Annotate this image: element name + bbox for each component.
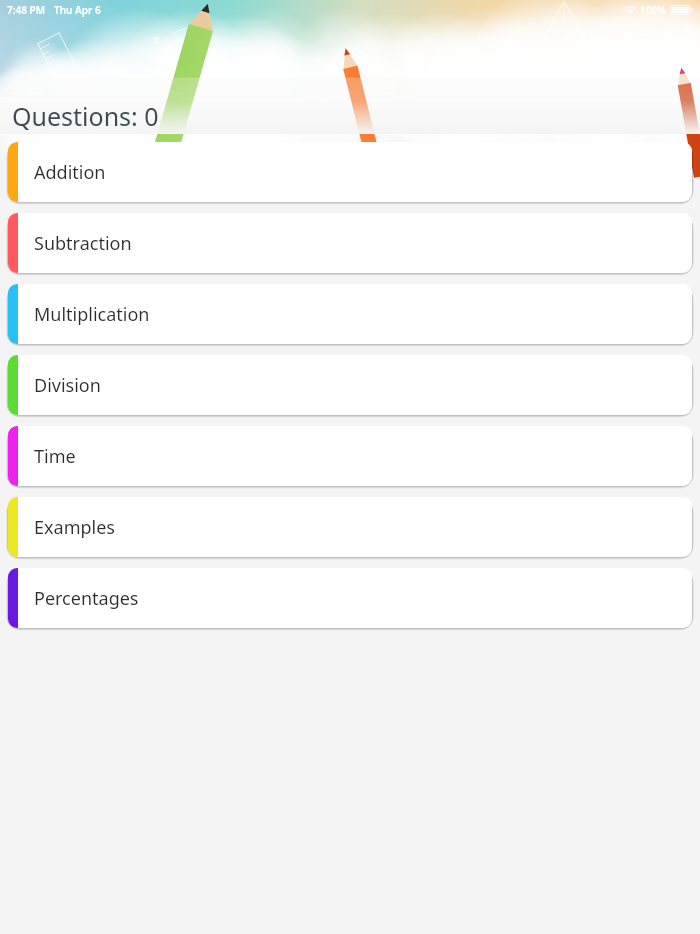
button[interactable]: Time bbox=[8, 426, 692, 486]
staticText: Examples bbox=[34, 515, 115, 540]
other: Battery bbox=[670, 5, 693, 15]
staticText: Questions: 0 bbox=[12, 99, 159, 133]
staticText: Subtraction bbox=[34, 231, 132, 256]
staticText: Addition bbox=[34, 160, 106, 185]
button[interactable]: Subtraction bbox=[8, 213, 692, 273]
button[interactable]: Percentages bbox=[8, 568, 692, 628]
staticText: 7:48 PM bbox=[7, 3, 45, 17]
staticText: Percentages bbox=[34, 586, 139, 611]
staticText: 100% bbox=[640, 3, 666, 17]
button[interactable]: Addition bbox=[8, 142, 692, 202]
staticText: Division bbox=[34, 373, 101, 398]
staticText: Time bbox=[34, 444, 76, 469]
staticText: Multiplication bbox=[34, 302, 150, 327]
button[interactable]: Multiplication bbox=[8, 284, 692, 344]
staticText: Thu Apr 6 bbox=[54, 3, 101, 17]
button[interactable]: Division bbox=[8, 355, 692, 415]
button[interactable]: Examples bbox=[8, 497, 692, 557]
other: Wi-Fi bbox=[623, 5, 636, 15]
